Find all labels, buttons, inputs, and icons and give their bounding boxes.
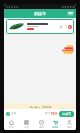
staticText: 1 — [65, 25, 67, 29]
button[interactable]: Decrease quantity — [6, 19, 74, 34]
staticText: 分类 — [24, 126, 29, 129]
staticText: 编辑 — [68, 12, 73, 15]
button[interactable]: 首页 — [4, 118, 19, 130]
staticText: ¥9.9 — [51, 112, 57, 116]
staticText: 发现 — [39, 126, 44, 129]
button[interactable]: Promotion banner — [61, 45, 75, 55]
button[interactable]: 购物车 — [48, 118, 62, 130]
staticText: 首页 — [9, 126, 14, 129]
button[interactable]: Increase quantity — [68, 25, 72, 29]
button[interactable]: Select all items — [6, 112, 10, 116]
button[interactable]: 发现 — [34, 118, 48, 130]
staticText: 结算(1) — [62, 112, 71, 116]
staticText: 我的 — [67, 126, 72, 129]
button[interactable]: 分类 — [19, 118, 34, 130]
button[interactable]: 我的 — [62, 118, 76, 130]
staticText: 合计 — [45, 112, 50, 115]
button[interactable]: 结算(1) — [59, 111, 74, 117]
button[interactable]: 编辑 — [67, 11, 74, 16]
staticText: 购物车 — [34, 11, 46, 16]
staticText: 满99减10 立即凑单 — [29, 105, 52, 108]
staticText: 购物车 — [52, 126, 59, 129]
button[interactable]: Decrease quantity — [59, 25, 63, 29]
staticText: 全选 — [11, 112, 16, 115]
